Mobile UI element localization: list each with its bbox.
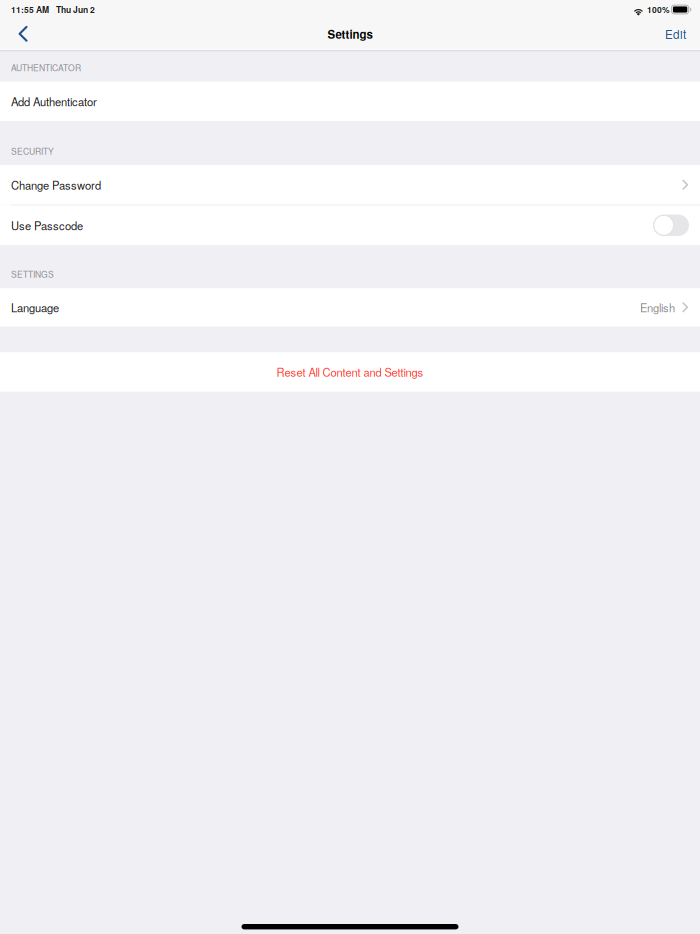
staticText: Add Authenticator [11,93,97,109]
staticText: Reset All Content and Settings [276,364,423,380]
staticText: AUTHENTICATOR [11,61,81,74]
button[interactable]: Language [0,288,700,327]
staticText: Language [11,299,59,315]
staticText: Use Passcode [11,217,83,233]
button[interactable]: Change Password [0,165,700,204]
staticText: Settings [327,26,372,42]
button[interactable]: Add Authenticator [0,82,700,121]
staticText: 100% [647,3,670,16]
button[interactable]: Back [5,19,38,49]
staticText: English [640,299,675,315]
button[interactable]: Reset All Content and Settings [0,352,700,392]
staticText: SETTINGS [11,268,54,280]
staticText: SECURITY [11,145,54,157]
button[interactable]: Edit [654,19,695,49]
button[interactable]: Use Passcode [0,205,700,245]
staticText: Thu Jun 2 [56,3,95,16]
staticText: Edit [665,26,686,42]
staticText: 11:55 AM [11,3,49,16]
staticText: Change Password [11,177,101,193]
